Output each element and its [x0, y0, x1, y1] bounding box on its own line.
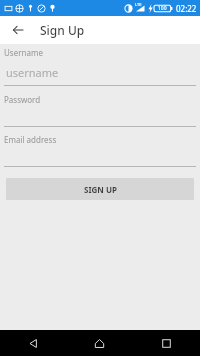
button[interactable]: Recent apps	[133, 330, 200, 356]
staticText: Username	[4, 47, 43, 58]
staticText: 02:22	[176, 3, 197, 14]
staticText: username	[6, 65, 59, 80]
staticText: Email address	[4, 134, 57, 145]
staticText: Sign Up	[40, 22, 85, 38]
button[interactable]: Back	[8, 20, 28, 40]
button[interactable]: SIGN UP	[6, 178, 194, 200]
staticText: SIGN UP	[84, 184, 117, 195]
staticText: LTE	[135, 2, 142, 7]
staticText: Password	[4, 94, 41, 105]
button[interactable]: Back	[0, 330, 66, 356]
staticText: 100	[158, 5, 167, 12]
button[interactable]: Home	[66, 330, 133, 356]
